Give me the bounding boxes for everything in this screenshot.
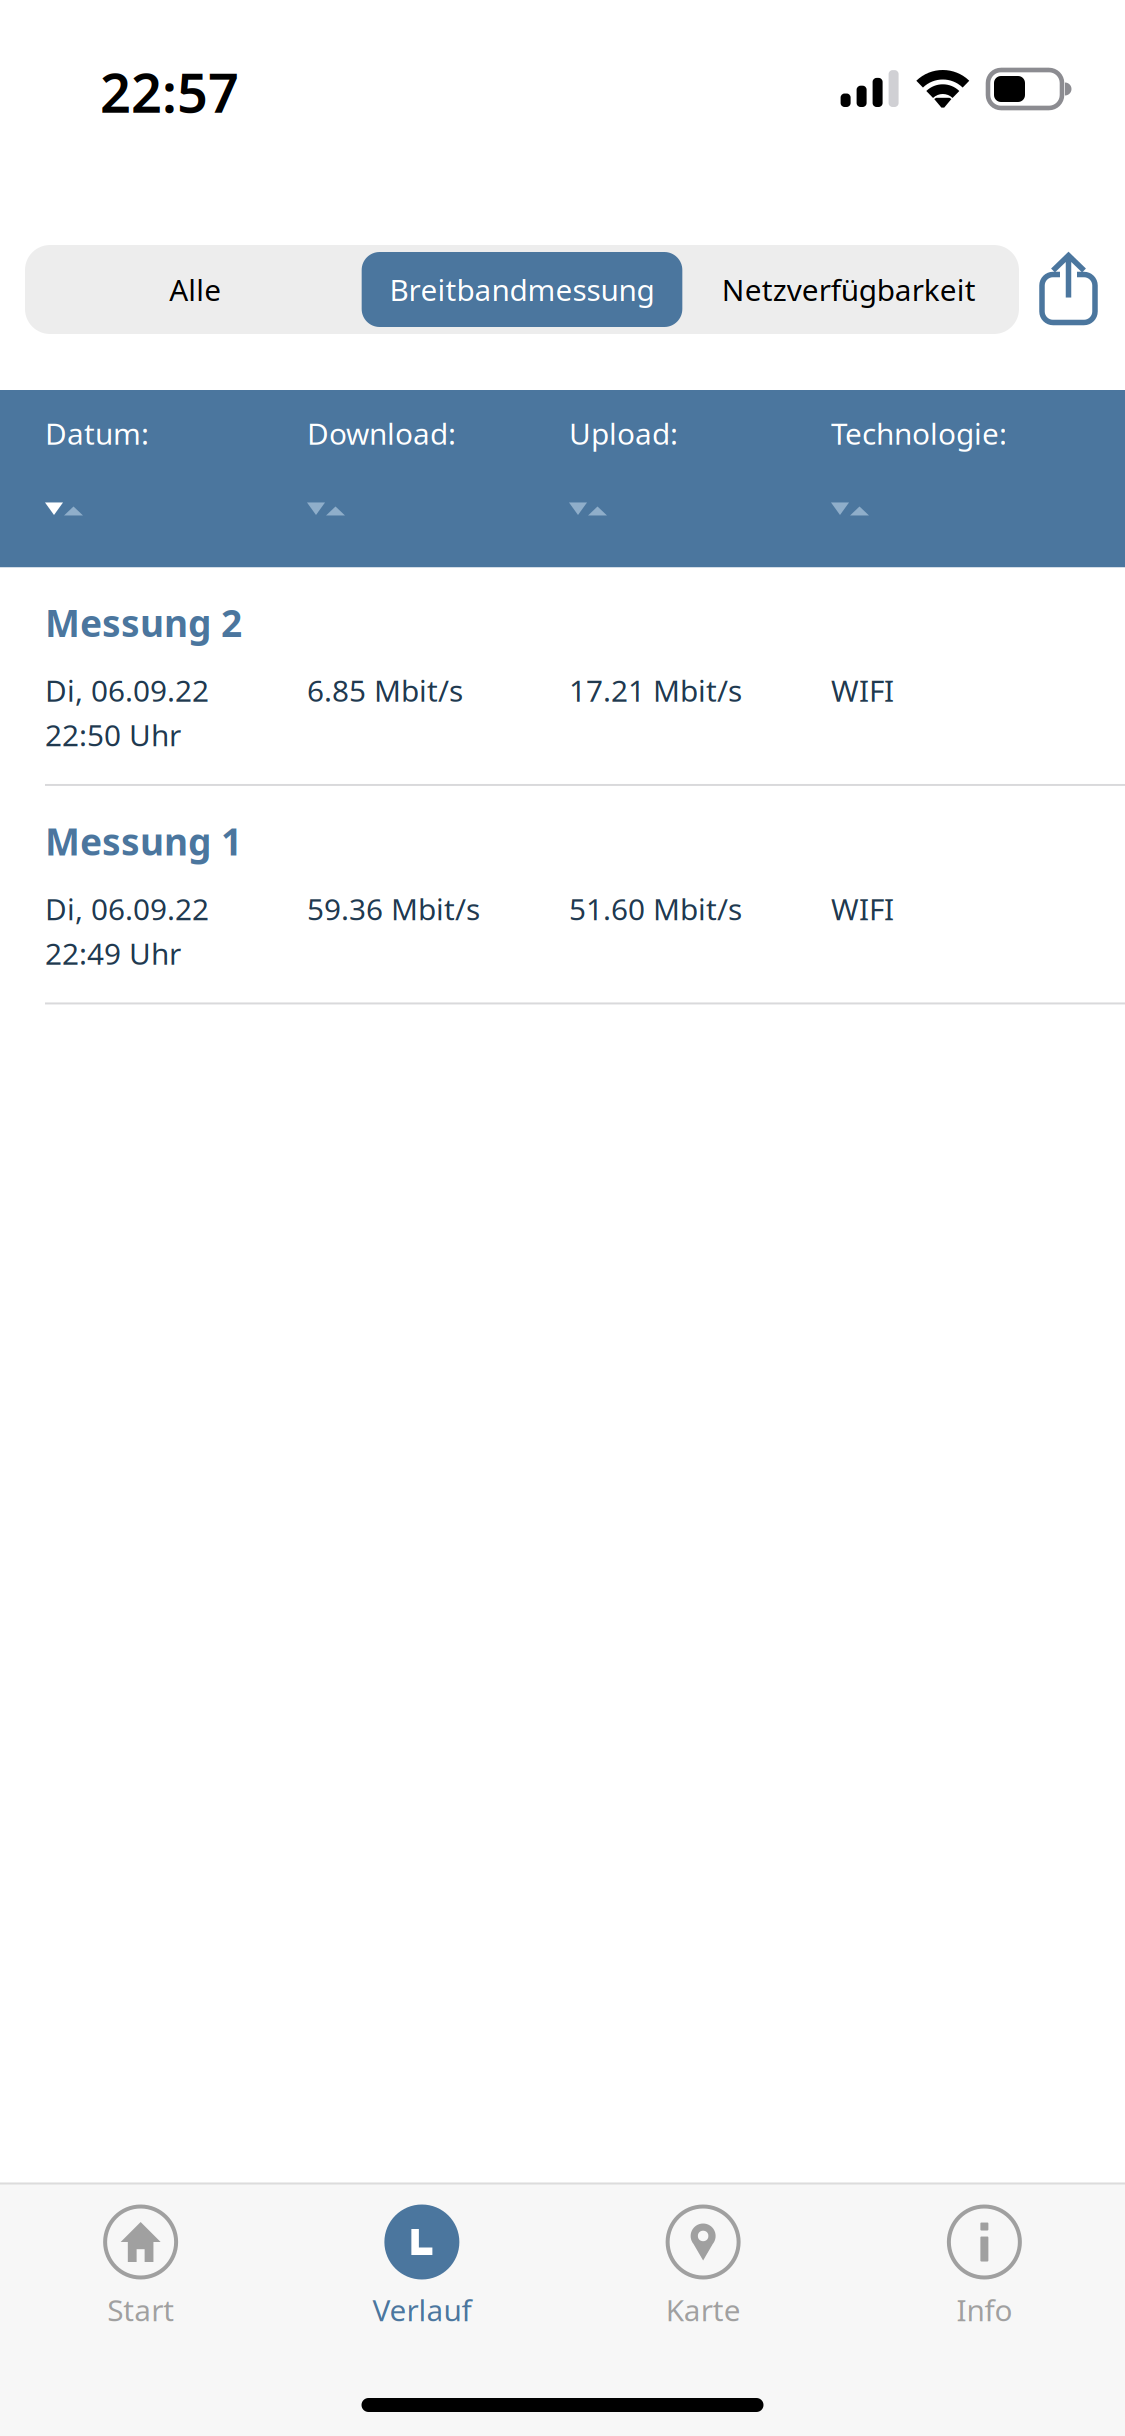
button[interactable]: Karte	[562, 2204, 844, 2330]
staticText: 22:57	[100, 55, 239, 128]
staticText: 6.85 Mbit/s	[307, 670, 463, 710]
button[interactable]: Info	[844, 2204, 1125, 2330]
staticText: Breitbandmessung	[389, 269, 654, 310]
button[interactable]: Messung 1	[0, 786, 1125, 1002]
button[interactable]: Messung 2	[0, 567, 1125, 784]
staticText: 22:50 Uhr	[45, 714, 181, 755]
button[interactable]: Breitbandmessung	[359, 252, 685, 327]
staticText: Di, 06.09.22	[45, 888, 209, 929]
staticText: 22:49 Uhr	[45, 933, 181, 973]
staticText: 59.36 Mbit/s	[307, 888, 480, 929]
staticText: Karte	[666, 2289, 741, 2330]
button[interactable]: Start	[0, 2204, 281, 2330]
button[interactable]: Teilen	[1019, 251, 1110, 327]
staticText: Verlauf	[372, 2289, 471, 2330]
staticText: Info	[956, 2289, 1012, 2330]
staticText: WIFI	[831, 888, 894, 929]
staticText: Download:	[307, 413, 456, 453]
staticText: Netzverfügbarkeit	[722, 269, 976, 310]
staticText: Alle	[169, 269, 221, 310]
button[interactable]: Alle	[32, 253, 359, 325]
staticText: Di, 06.09.22	[45, 670, 209, 710]
staticText: Technologie:	[831, 413, 1007, 453]
button[interactable]: Verlauf	[281, 2204, 562, 2330]
staticText: Messung 1	[45, 816, 242, 866]
staticText: Upload:	[569, 413, 678, 453]
button[interactable]: Netzverfügbarkeit	[685, 253, 1012, 325]
staticText: Messung 2	[45, 597, 242, 648]
staticText: Start	[107, 2289, 174, 2330]
staticText: WIFI	[831, 670, 894, 710]
staticText: Datum:	[45, 413, 149, 453]
staticText: 51.60 Mbit/s	[569, 888, 742, 929]
staticText: 17.21 Mbit/s	[569, 670, 742, 710]
